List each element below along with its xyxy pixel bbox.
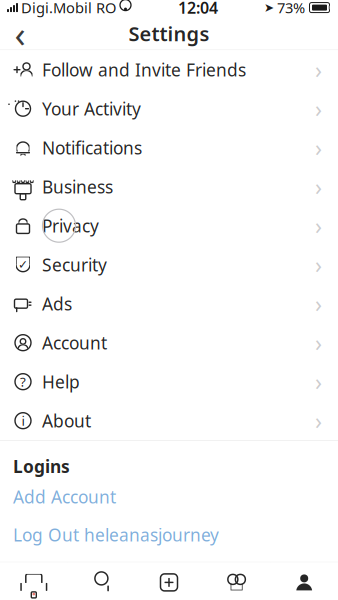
button[interactable]: i [0, 401, 338, 440]
staticText: Follow and Invite Friends [42, 58, 246, 81]
staticText: Help [42, 370, 80, 393]
button[interactable]: Profile [270, 562, 338, 600]
staticText: › [315, 367, 322, 397]
button[interactable]: Log Out heleanasjourney [0, 516, 338, 554]
staticText: 73% [277, 0, 305, 17]
staticText: › [315, 172, 322, 202]
button[interactable]: ? [0, 362, 338, 401]
staticText: Add Account [13, 485, 116, 508]
staticText: About [42, 409, 91, 432]
button[interactable]: Activity [203, 562, 270, 600]
staticText: › [315, 211, 322, 241]
button[interactable]: Search [68, 562, 135, 600]
button[interactable]: Add Account [0, 478, 338, 516]
staticText: Business [42, 175, 113, 198]
staticText: › [315, 94, 322, 124]
staticText: ✓ [18, 258, 28, 271]
staticText: › [315, 289, 322, 319]
staticText: Logins [13, 455, 70, 478]
button[interactable]: Ads [0, 284, 338, 323]
staticText: ➤ [264, 1, 274, 14]
button[interactable]: New Post [135, 562, 203, 600]
button[interactable]: ✓ [0, 245, 338, 284]
staticText: Account [42, 331, 107, 354]
staticText: Privacy [42, 214, 99, 237]
staticText: Ads [42, 292, 72, 315]
button[interactable]: Your Activity [0, 89, 338, 128]
button[interactable]: Back [0, 18, 40, 50]
staticText: › [315, 250, 322, 280]
button[interactable]: Account [0, 323, 338, 362]
button[interactable]: Home [0, 562, 68, 600]
staticText: Log Out heleanasjourney [13, 523, 219, 546]
staticText: i [21, 412, 24, 429]
button[interactable]: Business [0, 167, 338, 206]
button[interactable]: Follow and Invite Friends [0, 50, 338, 89]
staticText: ? [20, 373, 26, 390]
staticText: › [315, 406, 322, 436]
staticText: Notifications [42, 136, 142, 159]
staticText: › [315, 133, 322, 163]
button[interactable]: Notifications [0, 128, 338, 167]
staticText: › [315, 55, 322, 85]
staticText: Settings [128, 20, 209, 47]
button[interactable]: Privacy [0, 206, 338, 245]
staticText: Digi.Mobil RO [21, 0, 116, 17]
staticText: › [315, 328, 322, 358]
staticText: 12:04 [178, 0, 218, 18]
staticText: Security [42, 253, 107, 276]
staticText: Your Activity [42, 97, 141, 120]
staticText: ‹ [14, 10, 25, 57]
